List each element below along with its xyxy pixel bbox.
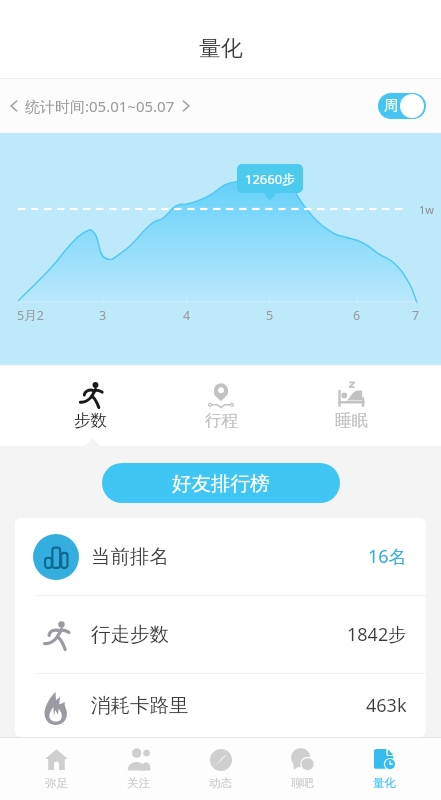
staticText: 3 [99,307,107,324]
button[interactable]: 行走步数 [15,596,426,673]
staticText: 7 [412,307,420,324]
staticText: 关注 [127,776,150,790]
button[interactable]: 好友排行榜 [102,463,340,503]
staticText: 弥足 [45,776,68,790]
staticText: 周 [384,97,398,115]
staticText: 消耗卡路里 [91,693,189,718]
staticText: 动态 [209,776,232,790]
staticText: 步数 [74,410,107,431]
staticText: 聊吧 [291,776,314,790]
button[interactable]: 睡眠 [286,365,416,446]
staticText: 量化 [373,776,396,790]
staticText: 1w [419,202,434,217]
button[interactable]: 弥足 [16,738,97,800]
button[interactable]: 动态 [179,738,261,800]
staticText: 当前排名 [91,544,169,569]
staticText: 行程 [205,410,238,431]
staticText: 1842步 [347,622,407,647]
button[interactable]: Week toggle [378,93,426,119]
button[interactable]: 步数 [25,365,156,446]
staticText: 好友排行榜 [172,471,270,496]
button[interactable]: 行程 [156,365,286,446]
staticText: 睡眠 [335,410,368,431]
staticText: 统计时间:05.01~05.07 [25,96,175,116]
button[interactable]: 消耗卡路里 [15,674,426,737]
staticText: 量化 [199,35,243,63]
staticText: 5 [266,307,274,324]
staticText: 6 [353,307,361,324]
staticText: 4 [183,307,191,324]
button[interactable]: 关注 [97,738,179,800]
button[interactable]: 聊吧 [261,738,343,800]
staticText: 12660步 [245,170,296,188]
staticText: 行走步数 [91,622,169,647]
staticText: 16名 [368,544,407,569]
button[interactable]: 量化 [343,738,425,800]
button[interactable]: 当前排名 [15,518,426,595]
staticText: 463k [366,693,407,718]
button[interactable]: 统计时间:05.01~05.07 [8,96,192,116]
staticText: 5月2 [17,307,44,324]
